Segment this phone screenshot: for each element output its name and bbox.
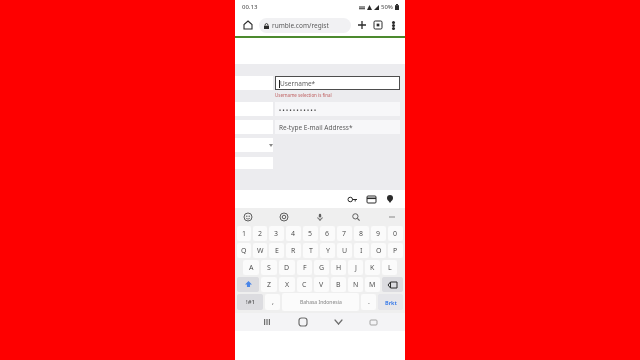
button[interactable]: T [303, 243, 318, 258]
button[interactable]: O [371, 243, 386, 258]
button[interactable]: Passwords [345, 192, 359, 206]
staticText: P [393, 246, 398, 256]
staticText: S [267, 263, 271, 273]
button[interactable]: 8 [354, 226, 369, 241]
button[interactable]: C [297, 277, 312, 292]
button[interactable]: E [269, 243, 284, 258]
button[interactable]: Tabs [370, 17, 386, 33]
button[interactable]: Enter [378, 294, 403, 310]
staticText: G [319, 263, 325, 273]
button[interactable]: U [337, 243, 352, 258]
button[interactable]: Shift [237, 277, 259, 292]
button[interactable]: Emoji [241, 210, 255, 224]
button[interactable]: 7 [337, 226, 352, 241]
button[interactable]: N [348, 277, 363, 292]
button[interactable]: Voice input [313, 210, 327, 224]
button[interactable]: rumble.com/regist [259, 18, 351, 33]
button[interactable]: Recents [259, 314, 275, 330]
button[interactable]: F [297, 260, 312, 275]
button[interactable]: Username* [275, 76, 400, 90]
button[interactable]: R [286, 243, 301, 258]
button[interactable]: H [331, 260, 346, 275]
staticText: V [319, 280, 324, 290]
staticText: 6 [325, 229, 330, 239]
button[interactable]: Re-type E-mail Address* [275, 120, 400, 134]
staticText: , [272, 297, 274, 307]
button[interactable]: 9 [371, 226, 386, 241]
button[interactable]: Home [240, 17, 256, 33]
button[interactable]: 5 [303, 226, 318, 241]
staticText: 5 [308, 229, 313, 239]
staticText: 7 [342, 229, 347, 239]
staticText: • • • • • • • • • • • [279, 106, 317, 113]
button[interactable]: Addresses [383, 192, 397, 206]
button[interactable]: Symbols [237, 294, 263, 310]
button[interactable]: Backspace [382, 277, 403, 292]
staticText: J [355, 263, 357, 273]
staticText: 3 [274, 229, 279, 239]
staticText: Re-type E-mail Address* [279, 123, 353, 132]
staticText: Z [267, 280, 272, 290]
staticText: !#1 [246, 298, 255, 306]
button[interactable]: J [348, 260, 363, 275]
staticText: O [376, 246, 382, 256]
button[interactable]: 3 [269, 226, 284, 241]
button[interactable]: B [331, 277, 346, 292]
button[interactable]: Q [237, 243, 251, 258]
staticText: Brkt [385, 299, 397, 306]
staticText: W [257, 246, 264, 256]
button[interactable]: Stickers [277, 210, 291, 224]
staticText: 00.13 [242, 3, 258, 11]
staticText: E [275, 246, 279, 256]
staticText: Y [326, 246, 330, 256]
button[interactable]: A [243, 260, 259, 275]
button[interactable]: K [365, 260, 380, 275]
button[interactable]: New tab [354, 17, 370, 33]
button[interactable]: Y [320, 243, 335, 258]
staticText: A [249, 263, 254, 273]
button[interactable]: I [354, 243, 369, 258]
staticText: B [336, 280, 341, 290]
button[interactable]: • • • • • • • • • • • [275, 102, 400, 116]
button[interactable]: 2 [253, 226, 267, 241]
staticText: F [303, 263, 307, 273]
button[interactable]: More options [386, 18, 400, 32]
button[interactable]: Search [349, 210, 363, 224]
staticText: 1 [242, 229, 247, 239]
staticText: D [284, 263, 290, 273]
button[interactable]: P [388, 243, 403, 258]
staticText: 0 [393, 229, 398, 239]
staticText: 8 [359, 229, 364, 239]
button[interactable]: S [261, 260, 277, 275]
staticText: H [336, 263, 342, 273]
staticText: 9 [376, 229, 381, 239]
staticText: rumble.com/regist [272, 21, 329, 30]
staticText: 50% [381, 3, 393, 11]
button[interactable]: 6 [320, 226, 335, 241]
staticText: Bahasa Indonesia [300, 299, 342, 306]
button[interactable]: Home [295, 314, 311, 330]
button[interactable]: M [365, 277, 380, 292]
button[interactable]: More [385, 210, 399, 224]
staticText: X [285, 280, 290, 290]
button[interactable]: L [382, 260, 397, 275]
button[interactable]: , [265, 294, 280, 310]
button[interactable]: Payment methods [364, 192, 378, 206]
button[interactable]: . [361, 294, 376, 310]
staticText: N [353, 280, 359, 290]
button[interactable]: Bahasa Indonesia [282, 293, 359, 311]
button[interactable]: Change keyboard [365, 314, 381, 330]
staticText: 2 [258, 229, 263, 239]
button[interactable]: Z [261, 277, 277, 292]
button[interactable]: G [314, 260, 329, 275]
button[interactable]: 1 [237, 226, 251, 241]
staticText: 4 [291, 229, 296, 239]
button[interactable]: D [279, 260, 295, 275]
button[interactable]: 0 [388, 226, 403, 241]
button[interactable]: X [279, 277, 295, 292]
button[interactable]: V [314, 277, 329, 292]
button[interactable]: 4 [286, 226, 301, 241]
button[interactable]: Hide keyboard [330, 314, 346, 330]
button[interactable]: W [253, 243, 267, 258]
staticText: K [370, 263, 375, 273]
